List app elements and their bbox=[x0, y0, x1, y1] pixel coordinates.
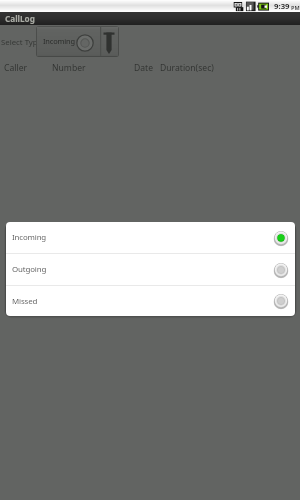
staticText: Number bbox=[52, 62, 86, 74]
staticText: Select Type bbox=[1, 37, 43, 48]
button[interactable]: Incoming bbox=[6, 222, 295, 253]
staticText: Caller bbox=[4, 62, 28, 74]
staticText: Date bbox=[134, 62, 154, 74]
staticText: Incoming bbox=[43, 36, 75, 46]
staticText: Outgoing bbox=[12, 264, 273, 275]
staticText: 9:39 bbox=[274, 1, 290, 12]
staticText: Missed bbox=[12, 296, 273, 307]
staticText: CallLog bbox=[5, 13, 35, 24]
button[interactable]: Missed bbox=[6, 286, 295, 316]
staticText: PM bbox=[291, 4, 300, 11]
staticText: Incoming bbox=[12, 232, 273, 243]
button[interactable]: Outgoing bbox=[6, 254, 295, 285]
staticText: Duration(sec) bbox=[160, 62, 214, 74]
button[interactable]: Select call type: Incoming bbox=[36, 26, 119, 57]
